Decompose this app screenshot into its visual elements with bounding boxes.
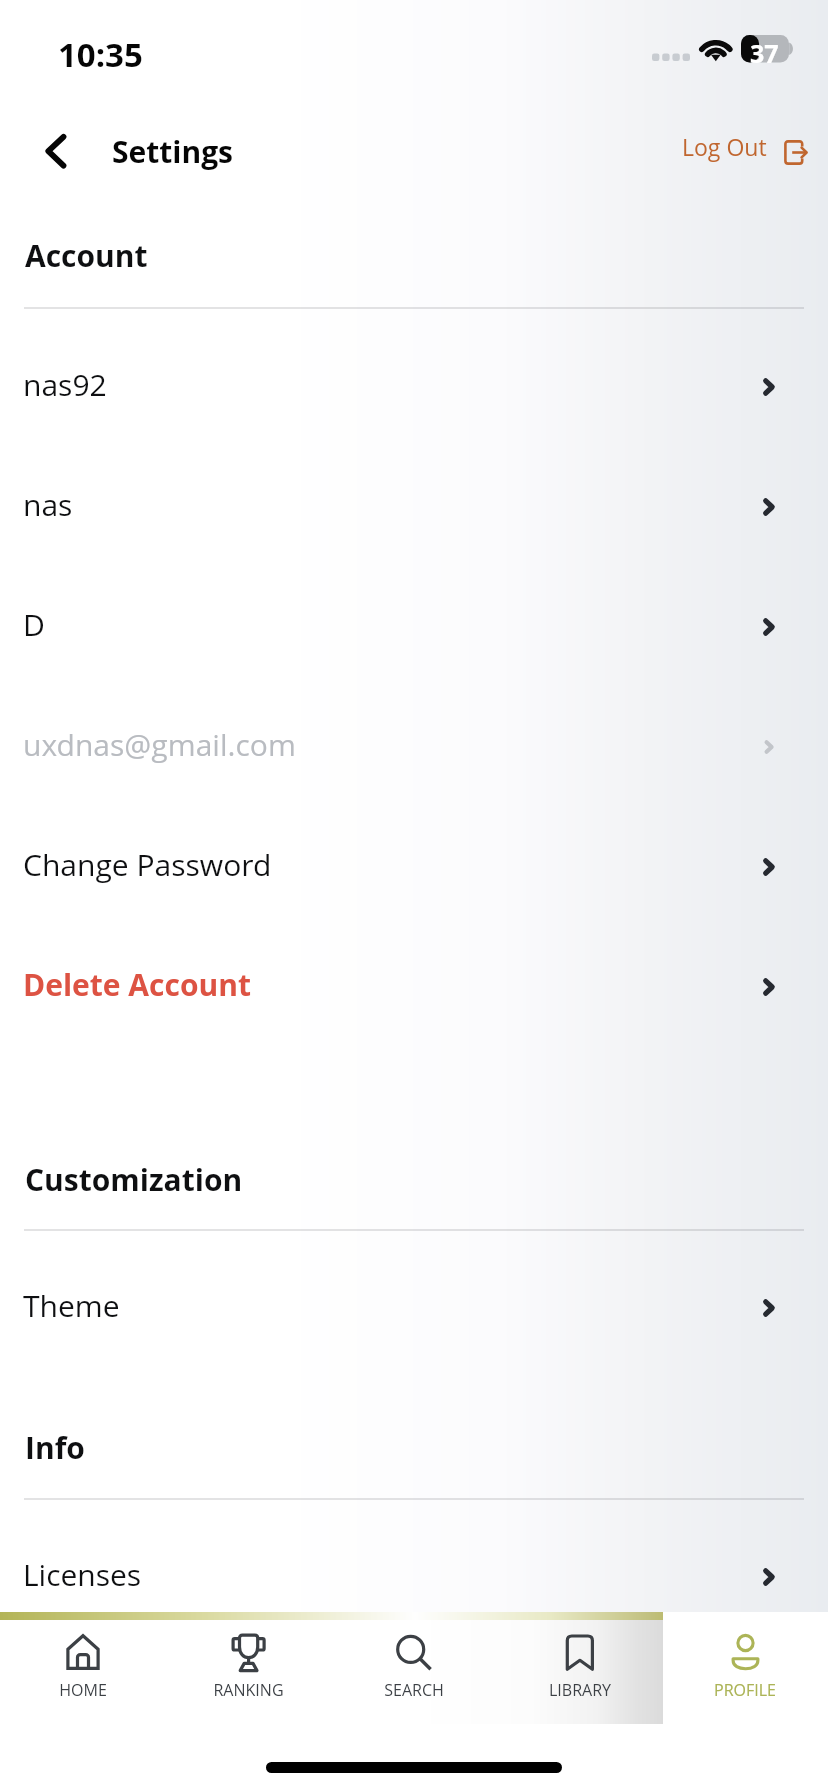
staticText: 37 xyxy=(750,36,779,64)
button[interactable]: LIBRARY xyxy=(498,1620,662,1716)
staticText: Change Password xyxy=(23,844,272,885)
staticText: Customization xyxy=(25,1159,243,1200)
staticText: Account xyxy=(25,235,148,276)
button[interactable]: Licenses xyxy=(0,1517,828,1637)
staticText: D xyxy=(23,604,45,645)
button[interactable]: Log Out xyxy=(669,121,821,174)
button[interactable]: Change Password xyxy=(0,807,828,927)
button[interactable]: Back xyxy=(27,123,83,179)
staticText: HOME xyxy=(59,1679,107,1701)
button[interactable]: nas xyxy=(0,447,828,567)
staticText: Delete Account xyxy=(23,964,251,1005)
staticText: PROFILE xyxy=(714,1679,776,1701)
button[interactable]: Delete Account xyxy=(0,927,828,1047)
button[interactable]: Theme xyxy=(0,1248,828,1368)
staticText: Log Out xyxy=(682,131,767,162)
staticText: Theme xyxy=(23,1285,120,1326)
button[interactable]: SEARCH xyxy=(332,1620,496,1716)
staticText: RANKING xyxy=(213,1679,284,1701)
staticText: SEARCH xyxy=(384,1679,444,1701)
staticText: uxdnas@gmail.com xyxy=(23,724,296,765)
staticText: Licenses xyxy=(23,1554,142,1595)
button[interactable]: HOME xyxy=(1,1620,165,1716)
button[interactable]: PROFILE xyxy=(663,1620,827,1716)
staticText: LIBRARY xyxy=(549,1679,611,1701)
staticText: 10:35 xyxy=(58,32,143,77)
staticText: nas92 xyxy=(23,364,107,405)
button[interactable]: D xyxy=(0,567,828,687)
staticText: Info xyxy=(25,1427,85,1468)
staticText: nas xyxy=(23,484,73,525)
button[interactable]: nas92 xyxy=(0,327,828,447)
button[interactable]: uxdnas@gmail.com xyxy=(0,687,828,807)
staticText: Settings xyxy=(112,131,234,172)
button[interactable]: RANKING xyxy=(166,1620,330,1716)
